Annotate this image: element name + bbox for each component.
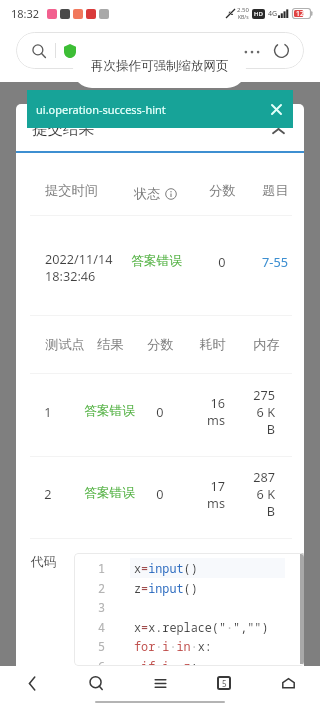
staticText: 内存	[253, 336, 280, 353]
other: More	[243, 44, 261, 58]
button[interactable]: 耗时	[172, 336, 252, 353]
staticText: x=x.replace("·","")	[134, 619, 269, 635]
other: Reload	[273, 42, 290, 59]
staticText: 答案错误	[84, 403, 135, 419]
button[interactable]: 内存	[226, 336, 304, 353]
staticText: 状态	[134, 185, 161, 202]
button[interactable]: 0	[182, 253, 262, 270]
button[interactable]: 答案错误	[116, 253, 196, 269]
staticText: 5	[222, 678, 227, 689]
staticText: 答案错误	[131, 253, 182, 269]
staticText: x=input()	[134, 560, 198, 576]
staticText: 分数	[209, 182, 236, 199]
button[interactable]: 结果	[70, 336, 150, 353]
button[interactable]: Menu	[128, 666, 192, 700]
button[interactable]: Collapse	[271, 124, 286, 139]
other: Search	[31, 43, 47, 59]
staticText: 18:32:46	[45, 267, 115, 284]
staticText: 0	[218, 253, 226, 270]
staticText: 2	[98, 580, 106, 596]
button[interactable]: 1	[16, 403, 88, 420]
staticText: 18:32	[11, 6, 40, 21]
staticText: 提交时间	[45, 182, 98, 199]
staticText: ui.operation-success-hint	[36, 102, 166, 117]
staticText: 测试点	[45, 336, 85, 353]
other: Close	[271, 104, 282, 115]
staticText: 2.50	[237, 6, 249, 14]
button[interactable]: 7-55	[235, 253, 304, 270]
staticText: 1	[98, 560, 106, 576]
staticText: 275	[235, 386, 275, 403]
staticText: 12	[296, 9, 305, 19]
button[interactable]: 状态	[134, 185, 177, 202]
button[interactable]: ui.operation-success-hint	[27, 90, 293, 128]
button[interactable]: 分数	[182, 182, 262, 199]
staticText: 5	[98, 638, 106, 654]
button[interactable]: 答案错误	[69, 485, 149, 501]
staticText: 0	[156, 485, 164, 502]
staticText: 6 K	[235, 485, 275, 502]
button[interactable]: Back	[0, 666, 64, 700]
button[interactable]: 提交时间	[31, 182, 111, 199]
staticText: ms	[185, 494, 225, 511]
staticText: 0	[156, 403, 164, 420]
staticText: 分数	[147, 336, 174, 353]
staticText: 耗时	[199, 336, 226, 353]
staticText: 4	[98, 619, 106, 635]
staticText: KB/s	[238, 14, 249, 21]
staticText: 17	[185, 477, 225, 494]
staticText: 6 K	[235, 403, 275, 420]
staticText: 6	[98, 658, 106, 666]
staticText: 4G	[268, 9, 278, 19]
staticText: 题目	[262, 182, 289, 199]
button[interactable]: Home	[256, 666, 320, 700]
staticText: ms	[185, 411, 225, 428]
staticText: 287	[235, 468, 275, 485]
button[interactable]: 测试点	[25, 336, 105, 353]
button[interactable]: Tabs	[192, 666, 256, 700]
staticText: 2	[44, 485, 52, 502]
button[interactable]: 0	[120, 403, 200, 420]
button[interactable]: 0	[120, 485, 200, 502]
staticText: 2022/11/14	[45, 250, 115, 267]
staticText: B	[235, 420, 275, 437]
staticText: z=input()	[134, 580, 198, 596]
button[interactable]: Search	[16, 32, 304, 69]
button[interactable]: 分数	[120, 336, 200, 353]
staticText: 代码	[31, 554, 57, 570]
staticText: 提交结果	[32, 119, 94, 139]
button[interactable]: 题目	[235, 182, 304, 199]
staticText: 16	[185, 394, 225, 411]
staticText: 答案错误	[84, 485, 135, 501]
button[interactable]: Search	[64, 666, 128, 700]
staticText: B	[235, 502, 275, 519]
staticText: 3	[98, 599, 106, 615]
staticText: 再次操作可强制缩放网页	[91, 58, 229, 74]
staticText: for·i·in·x:	[134, 638, 212, 654]
staticText: ·if·i==z:	[134, 658, 198, 666]
staticText: 结果	[97, 336, 124, 353]
staticText: 7-55	[262, 253, 288, 270]
staticText: HD	[254, 10, 263, 18]
button[interactable]: 答案错误	[69, 403, 149, 419]
staticText: 1	[44, 403, 52, 420]
button[interactable]: 2	[16, 485, 88, 502]
